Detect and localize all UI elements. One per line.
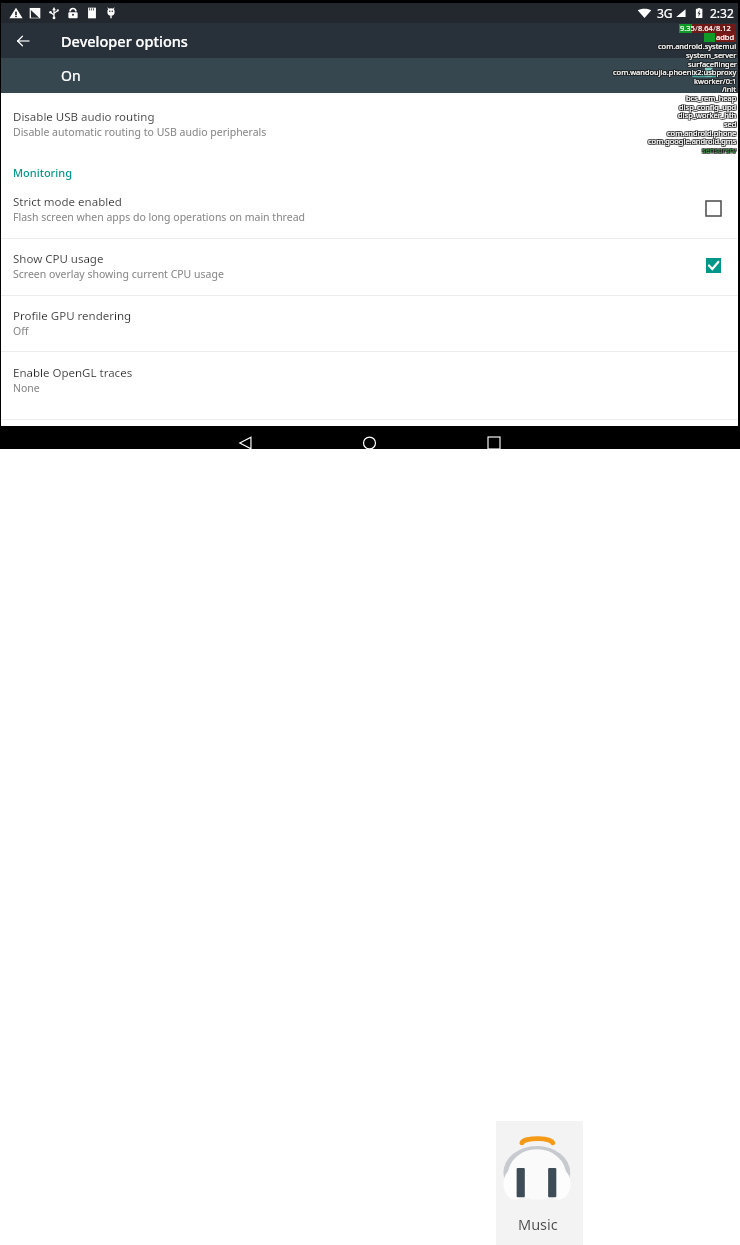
staticText: kworker/0:1 [693,76,736,86]
staticText: disp_config_upd [678,101,736,111]
staticText: disp_worker_hth [679,110,738,120]
staticText: sensorsrv [703,145,738,155]
staticText: com.wandoujia.phoenix2:usbproxy [612,66,736,76]
button[interactable]: Back [221,426,269,449]
staticText: system_server [687,49,738,59]
staticText: com.google.android.gms [648,135,737,145]
staticText: bcs_rem_heap [685,93,736,103]
staticText: Disable automatic routing to USB audio p… [13,125,267,139]
staticText: com.android.phone [667,128,737,138]
staticText: /init [721,83,736,93]
staticText: disp_config_upd [680,101,738,111]
staticText: disp_config_upd [678,102,736,112]
staticText: Off [13,324,29,338]
staticText: kworker/0:1 [694,76,737,86]
staticText: /init [723,83,738,93]
staticText: surfaceflinger [687,59,736,69]
staticText: sensorsrv [702,145,737,155]
staticText: bcs_rem_heap [686,92,737,102]
staticText: disp_config_upd [680,102,738,112]
staticText: com.wandoujia.phoenix2:usbproxy [613,66,737,76]
staticText: disp_worker_hth [678,111,737,121]
button[interactable]: Music [496,1121,583,1245]
staticText: com.android.phone [667,127,737,137]
staticText: kworker/0:1 [693,75,736,85]
staticText: com.google.android.gms [648,136,737,146]
staticText: com.wandoujia.phoenix2:usbproxy [614,68,738,78]
staticText: Developer options [61,31,188,51]
staticText: com.google.android.gms [649,137,738,147]
staticText: /init [722,83,737,93]
staticText: com.android.systemui [658,41,737,51]
button[interactable]: Profile GPU rendering [0,295,740,351]
staticText: disp_config_upd [678,103,736,113]
staticText: com.android.systemui [658,42,737,52]
staticText: / [695,23,698,33]
staticText: com.android.systemui [659,40,738,50]
button[interactable]: Show CPU usage [0,238,740,295]
staticText: kworker/0:1 [695,77,738,87]
staticText: / [713,23,716,33]
staticText: /init [721,85,736,95]
staticText: com.wandoujia.phoenix2:usbproxy [613,67,737,77]
staticText: system_server [686,49,737,59]
staticText: com.android.phone [666,129,736,139]
staticText: On [61,66,81,85]
staticText: com.wandoujia.phoenix2:usbproxy [614,66,738,76]
staticText: surfaceflinger [689,59,738,69]
staticText: sensorsrv [703,146,738,156]
staticText: sed [725,118,738,128]
staticText: disp_worker_hth [677,109,736,119]
staticText: system_server [687,50,738,60]
staticText: disp_config_upd [679,101,737,111]
staticText: sed [723,118,736,128]
staticText: com.wandoujia.phoenix2:usbproxy [612,67,736,77]
staticText: 8.12 [716,23,731,33]
staticText: /init [723,85,738,95]
staticText: bcs_rem_heap [687,93,738,103]
staticText: sed [724,118,737,128]
staticText: surfaceflinger [687,60,736,70]
button[interactable]: Home [345,426,393,449]
button[interactable]: On [0,58,740,93]
staticText: disp_config_upd [679,102,737,112]
staticText: com.android.systemui [657,40,736,50]
button[interactable]: Recent apps [470,426,518,449]
staticText: sed [723,120,736,130]
staticText: 3G [657,5,673,21]
staticText: com.android.systemui [659,41,738,51]
staticText: /init [722,85,737,95]
staticText: system_server [686,50,737,60]
button[interactable]: Enable OpenGL traces [0,351,740,419]
staticText: surfaceflinger [688,60,737,70]
button[interactable]: Navigate up [0,23,46,58]
staticText: com.android.phone [666,127,736,137]
staticText: sensorsrv [701,145,736,155]
staticText: Enable OpenGL traces [13,365,133,381]
staticText: bcs_rem_heap [686,94,737,104]
staticText: disp_worker_hth [679,111,738,121]
staticText: Monitoring [13,165,72,180]
staticText: disp_config_upd [680,103,738,113]
staticText: disp_worker_hth [677,111,736,121]
staticText: Flash screen when apps do long operation… [13,210,306,224]
staticText: /init [721,84,736,94]
staticText: system_server [685,50,736,60]
staticText: com.google.android.gms [647,136,736,146]
staticText: kworker/0:1 [695,76,738,86]
staticText: disp_worker_hth [678,110,737,120]
button[interactable]: Disable USB audio routing [0,93,740,150]
staticText: bcs_rem_heap [685,92,736,102]
staticText: com.android.systemui [658,40,737,50]
staticText: sensorsrv [701,146,736,156]
staticText: system_server [685,49,736,59]
staticText: 2:32 [710,5,734,21]
staticText: Apps [13,422,40,437]
staticText: sed [723,119,736,129]
staticText: com.google.android.gms [648,137,737,147]
staticText: bcs_rem_heap [686,93,737,103]
staticText: com.google.android.gms [647,137,736,147]
staticText: sensorsrv [702,146,737,156]
button[interactable]: Strict mode enabled [0,178,740,238]
staticText: com.google.android.gms [649,135,738,145]
